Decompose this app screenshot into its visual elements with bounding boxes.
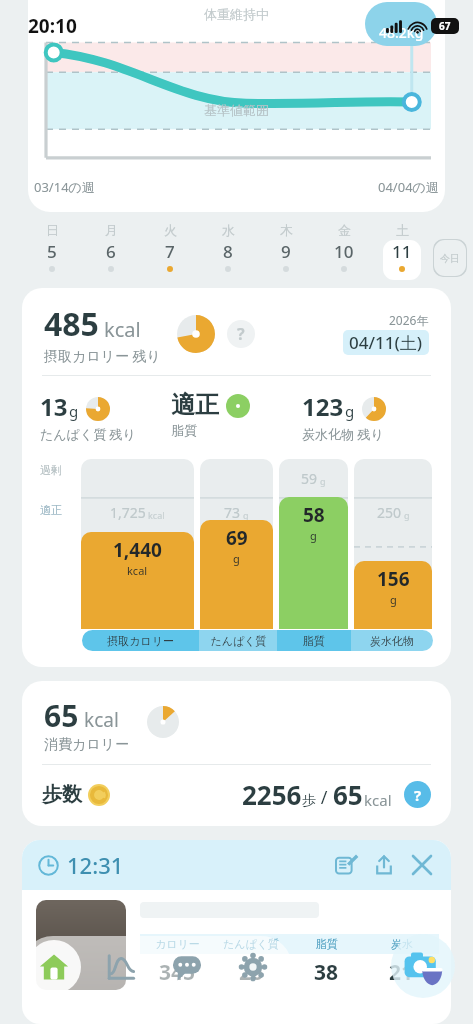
button[interactable]: 共有 — [371, 852, 397, 878]
button[interactable]: 13 — [40, 390, 171, 443]
button[interactable]: 閉じる — [409, 852, 435, 878]
staticText: 炭水化物 残り — [302, 425, 384, 443]
staticText: 69 — [226, 525, 248, 551]
button[interactable]: 6 — [92, 240, 130, 280]
staticText: 2256 — [242, 777, 302, 812]
button[interactable]: 7 — [151, 240, 189, 280]
staticText: 9 — [281, 240, 291, 263]
button[interactable]: 73 — [200, 459, 273, 651]
staticText: 21 — [389, 958, 414, 987]
button[interactable]: たんぱく質 — [199, 630, 277, 651]
staticText: 炭水化物 — [370, 634, 414, 648]
button[interactable]: メッセージ — [162, 942, 212, 992]
button[interactable]: 歩数 — [42, 777, 431, 812]
staticText: 今日 — [440, 252, 460, 265]
button[interactable]: グラフ — [96, 942, 146, 992]
button[interactable]: 8 — [209, 240, 247, 280]
staticText: ? — [414, 785, 422, 805]
button[interactable]: 食事を記録 — [391, 934, 455, 998]
staticText: 摂取カロリー — [107, 634, 174, 648]
staticText: 適正 — [171, 390, 219, 420]
button[interactable]: 摂取カロリー — [82, 630, 199, 651]
staticText: g — [310, 528, 317, 543]
staticText: 13 — [40, 390, 68, 423]
staticText: 345 — [159, 958, 196, 987]
staticText: 10 — [334, 240, 354, 263]
staticText: 1,725 — [110, 503, 146, 522]
staticText: たんぱく質 — [223, 937, 280, 951]
staticText: 6 — [106, 240, 116, 263]
button[interactable]: カロリー — [22, 890, 451, 1024]
staticText: / — [316, 785, 333, 810]
button[interactable]: 123 — [302, 390, 433, 443]
button[interactable]: 485 — [44, 302, 429, 365]
staticText: 脂質 — [171, 422, 197, 438]
button[interactable]: 59 — [279, 459, 348, 651]
button[interactable]: 脂質 — [277, 630, 351, 651]
button[interactable]: 11 — [383, 240, 421, 280]
staticText: ? — [237, 323, 245, 345]
button[interactable]: 65 — [22, 681, 451, 826]
staticText: 04/04の週 — [378, 178, 439, 196]
staticText: 58 — [303, 502, 325, 528]
staticText: 木 — [280, 222, 293, 238]
staticText: g — [69, 401, 79, 421]
staticText: 火 — [164, 222, 177, 238]
staticText: カロリー — [155, 937, 200, 951]
staticText: 20:10 — [28, 13, 77, 39]
staticText: 基準値範囲 — [204, 102, 269, 118]
button[interactable]: 1,725 — [81, 459, 194, 651]
staticText: 73 — [224, 503, 241, 522]
staticText: 消費カロリー — [44, 736, 129, 754]
staticText: 過剰 — [40, 463, 62, 477]
staticText: g — [345, 401, 355, 421]
staticText: 04/11(土) — [349, 331, 423, 354]
button[interactable]: ホーム — [27, 940, 81, 994]
staticText: 土 — [396, 222, 409, 238]
staticText: 日 — [46, 222, 59, 238]
button[interactable]: 9 — [267, 240, 305, 280]
staticText: 適正 — [40, 503, 62, 517]
staticText: 脂質 — [303, 634, 325, 648]
button[interactable]: 炭水化物 — [351, 630, 433, 651]
staticText: kcal — [104, 316, 141, 343]
staticText: g — [320, 509, 326, 521]
staticText: 48.2kg — [379, 23, 424, 42]
staticText: 156 — [377, 566, 410, 592]
staticText: 月 — [105, 222, 118, 238]
staticText: 65 — [333, 777, 363, 812]
staticText: 26 — [239, 958, 264, 987]
staticText: 8 — [223, 240, 233, 263]
button[interactable]: ヘルプ — [227, 320, 255, 348]
staticText: kcal — [127, 563, 148, 578]
staticText: 59 — [301, 503, 318, 522]
button[interactable]: 10 — [325, 240, 363, 280]
staticText: kcal — [84, 707, 119, 733]
button[interactable]: 今日 — [433, 239, 467, 277]
button[interactable]: 250 — [354, 459, 432, 651]
button[interactable]: 設定 — [228, 942, 278, 992]
staticText: g — [390, 592, 397, 607]
staticText: 歩 — [302, 792, 316, 810]
staticText: 123 — [302, 390, 344, 423]
staticText: g — [320, 475, 326, 487]
staticText: たんぱく質 残り — [40, 425, 136, 443]
staticText: g — [243, 509, 249, 521]
staticText: 485 — [44, 302, 99, 346]
staticText: 1,440 — [113, 537, 162, 563]
staticText: 2026年 — [389, 312, 429, 328]
staticText: 65 — [44, 695, 79, 736]
staticText: kcal — [364, 790, 392, 810]
button[interactable]: 適正 — [171, 390, 302, 438]
staticText: 12:31 — [67, 850, 124, 880]
staticText: 250 — [377, 503, 402, 522]
button[interactable]: ヘルプ — [404, 781, 431, 808]
staticText: 炭水 — [391, 937, 413, 951]
staticText: 脂質 — [316, 937, 338, 951]
staticText: 5 — [47, 240, 57, 263]
button[interactable]: 体重維持中 — [28, 0, 445, 212]
staticText: 金 — [338, 222, 351, 238]
staticText: 67 — [439, 19, 451, 33]
button[interactable]: 編集 — [333, 852, 359, 878]
button[interactable]: 5 — [33, 240, 71, 280]
